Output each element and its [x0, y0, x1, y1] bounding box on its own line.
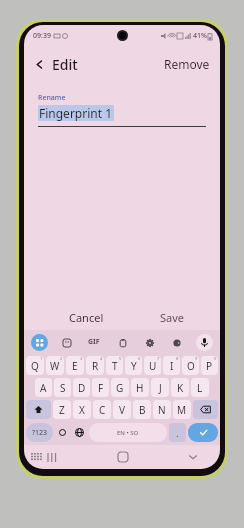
button[interactable]: Recents — [42, 447, 62, 467]
staticText: T — [112, 359, 118, 373]
button[interactable]: N — [153, 400, 171, 419]
staticText: GIF — [88, 337, 100, 347]
button[interactable]: H — [131, 378, 149, 397]
staticText: Save — [160, 310, 185, 325]
button[interactable]: W — [46, 356, 64, 375]
staticText: E — [72, 359, 78, 373]
staticText: V — [119, 403, 125, 417]
button[interactable]: Remove — [160, 51, 214, 77]
staticText: O — [187, 359, 195, 373]
button[interactable]: Backspace — [193, 400, 218, 419]
button[interactable]: O — [182, 356, 199, 375]
button[interactable]: . — [169, 423, 186, 442]
staticText: S — [60, 381, 66, 395]
button[interactable]: Language — [72, 423, 87, 442]
button[interactable]: Home — [113, 447, 133, 467]
button[interactable]: L — [191, 378, 209, 397]
staticText: B — [139, 403, 146, 417]
staticText: EN • SO — [117, 429, 139, 437]
staticText: 3 — [80, 356, 83, 361]
staticText: J — [159, 381, 162, 395]
staticText: I — [170, 359, 174, 373]
button[interactable]: K — [171, 378, 189, 397]
button[interactable]: E — [66, 356, 84, 375]
staticText: Q — [31, 359, 39, 373]
staticText: K — [177, 381, 184, 395]
staticText: U — [149, 359, 157, 373]
button[interactable]: D — [73, 378, 90, 397]
staticText: . — [176, 427, 179, 439]
staticText: Cancel — [69, 310, 104, 325]
button[interactable]: P — [201, 356, 218, 375]
button[interactable]: G — [111, 378, 129, 397]
staticText: ?123 — [32, 428, 48, 438]
button[interactable]: Shift — [26, 400, 51, 419]
button[interactable]: R — [86, 356, 104, 375]
button[interactable]: Rename — [38, 93, 206, 127]
staticText: Edit — [52, 55, 78, 74]
staticText: A — [40, 381, 47, 395]
staticText: L — [197, 381, 203, 395]
button[interactable]: X — [73, 400, 91, 419]
button[interactable]: Y — [125, 356, 142, 375]
button[interactable]: Cancel — [63, 306, 110, 329]
button[interactable]: Back — [183, 447, 203, 467]
button[interactable]: Q — [26, 356, 44, 375]
button[interactable]: EN • SO — [89, 423, 167, 442]
staticText: 4 — [100, 356, 103, 361]
button[interactable]: A — [35, 378, 52, 397]
button[interactable]: M — [173, 400, 191, 419]
staticText: 0 — [214, 356, 217, 361]
button[interactable]: S — [54, 378, 71, 397]
button[interactable]: ?123 — [26, 423, 53, 442]
staticText: C — [99, 403, 106, 417]
staticText: Y — [131, 359, 137, 373]
button[interactable]: Hide keyboard — [31, 452, 42, 463]
staticText: 7 — [157, 356, 160, 361]
button[interactable]: Z — [53, 400, 71, 419]
button[interactable]: Clipboard — [115, 335, 130, 350]
button[interactable]: J — [151, 378, 169, 397]
staticText: 6 — [138, 356, 141, 361]
staticText: Remove — [164, 56, 210, 72]
staticText: P — [206, 359, 213, 373]
staticText: F — [98, 381, 104, 395]
other: Back — [34, 59, 45, 70]
button[interactable]: V — [113, 400, 131, 419]
button[interactable]: Back — [30, 51, 82, 78]
button[interactable]: B — [133, 400, 151, 419]
staticText: 09:39 — [33, 31, 51, 41]
button[interactable]: Voice input — [196, 334, 213, 351]
staticText: H — [136, 381, 144, 395]
button[interactable]: C — [93, 400, 111, 419]
staticText: Z — [59, 403, 65, 417]
button[interactable]: Emoji — [55, 423, 70, 442]
staticText: N — [158, 403, 166, 417]
button[interactable]: GIF — [85, 334, 103, 350]
button[interactable]: U — [144, 356, 161, 375]
button[interactable]: I — [163, 356, 180, 375]
button[interactable]: Themes — [169, 335, 184, 350]
staticText: Fingerprint 1 — [39, 105, 113, 121]
staticText: Rename — [38, 93, 66, 103]
staticText: W — [50, 359, 60, 373]
staticText: 2 — [60, 356, 63, 361]
staticText: 5 — [119, 356, 122, 361]
button[interactable]: Keyboard modes — [31, 334, 48, 351]
staticText: 41% — [193, 31, 207, 41]
button[interactable]: T — [106, 356, 123, 375]
staticText: M — [177, 403, 187, 417]
button[interactable]: Settings — [142, 335, 157, 350]
staticText: 8 — [176, 356, 179, 361]
button[interactable]: Done — [188, 423, 218, 442]
staticText: D — [78, 381, 86, 395]
button[interactable]: Save — [154, 306, 191, 329]
staticText: G — [116, 381, 124, 395]
staticText: 9 — [195, 356, 198, 361]
staticText: 1 — [40, 356, 43, 361]
staticText: R — [92, 359, 99, 373]
staticText: X — [79, 403, 85, 417]
button[interactable]: F — [92, 378, 109, 397]
button[interactable]: Stickers — [59, 335, 74, 350]
